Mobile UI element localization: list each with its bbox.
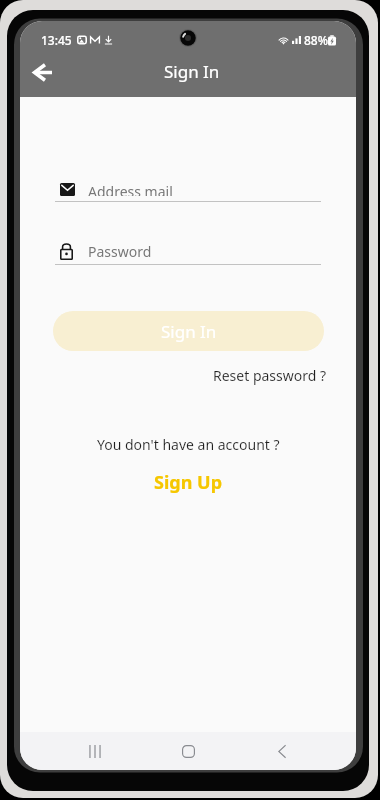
staticText: You don't have an account ? [97,435,280,454]
button[interactable]: Back [263,732,301,770]
staticText: Sign In [164,60,220,83]
button[interactable]: Reset password ? [211,364,329,387]
staticText: Sign In [161,320,217,343]
staticText: Reset password ? [213,366,327,385]
button[interactable]: Sign In [53,311,324,351]
staticText: Address mail [88,182,173,196]
button[interactable]: Home [169,732,207,770]
button[interactable]: Recents [76,732,114,770]
staticText: 88% [304,32,328,48]
staticText: 13:45 [41,32,72,48]
button[interactable]: Back [23,53,61,91]
button[interactable]: Sign Up [151,467,226,498]
staticText: Sign Up [154,470,223,495]
staticText: Password [88,242,152,260]
